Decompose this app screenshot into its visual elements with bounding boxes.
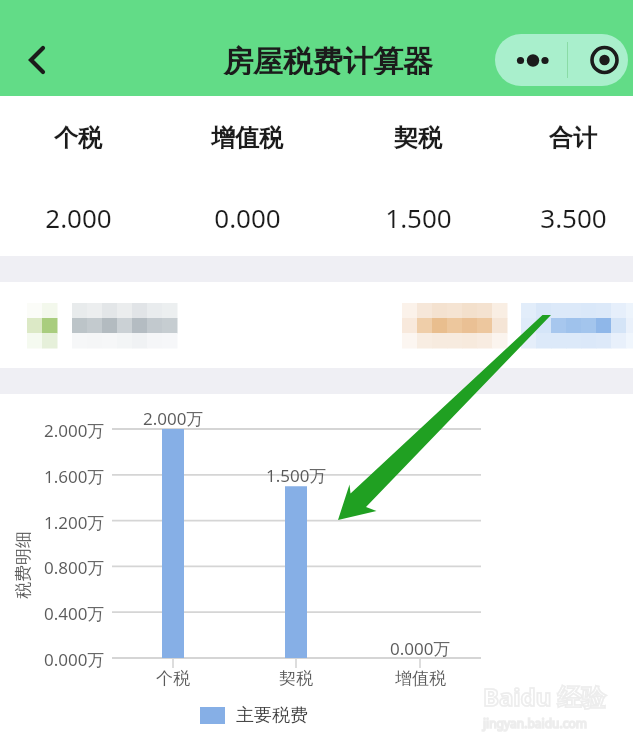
staticText: 2.000万 (143, 407, 204, 430)
staticText: 1.500万 (266, 464, 327, 487)
button[interactable]: More options (495, 34, 567, 86)
staticText: 合计 (549, 123, 597, 153)
staticText: 0.800万 (44, 556, 105, 579)
button[interactable] (0, 282, 633, 368)
button[interactable]: 合计 (513, 118, 633, 158)
staticText: 0.000万 (44, 648, 105, 671)
staticText: 0.000万 (390, 637, 451, 660)
button[interactable]: 个税 (18, 118, 138, 158)
button[interactable]: 增值税 (187, 118, 307, 158)
staticText: 契税 (394, 123, 442, 153)
staticText: 主要税费 (236, 704, 308, 726)
staticText: 2.000万 (44, 419, 105, 442)
staticText: 个税 (156, 668, 190, 689)
staticText: 个税 (54, 123, 102, 153)
button[interactable]: 主要税费 (200, 704, 308, 726)
staticText: 1.200万 (44, 511, 105, 534)
staticText: 0.000 (214, 200, 281, 235)
staticText: jingyan.baidu.com (483, 715, 587, 731)
staticText: 增值税 (395, 668, 446, 689)
staticText: 1.600万 (44, 465, 105, 488)
button[interactable]: Back (8, 36, 64, 84)
staticText: 3.500 (540, 200, 607, 235)
staticText: 契税 (279, 668, 313, 689)
staticText: Baidu 经验 (483, 680, 606, 713)
button[interactable]: Close mini program (568, 34, 628, 86)
staticText: 1.500 (385, 200, 452, 235)
button[interactable]: 契税 (358, 118, 478, 158)
staticText: 0.400万 (44, 602, 105, 625)
staticText: 税费明细 (13, 531, 34, 599)
staticText: 增值税 (211, 123, 283, 153)
staticText: 2.000 (45, 200, 112, 235)
staticText: 房屋税费计算器 (223, 43, 433, 75)
